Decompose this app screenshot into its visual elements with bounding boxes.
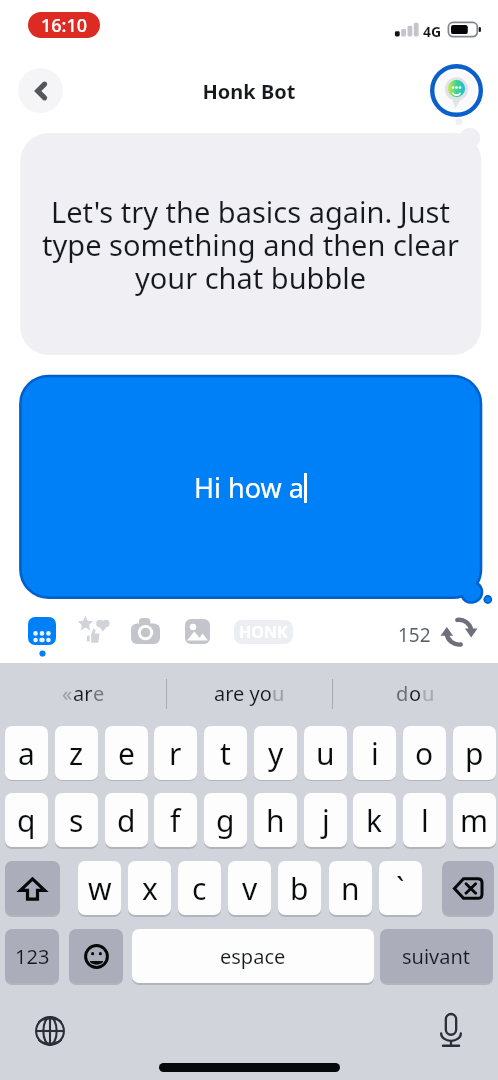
staticText: y bbox=[268, 733, 284, 774]
button[interactable]: Emoji bbox=[69, 929, 123, 983]
button[interactable]: e bbox=[105, 726, 148, 780]
staticText: 4G bbox=[423, 22, 442, 41]
staticText: f bbox=[170, 800, 181, 841]
button[interactable]: Backspace bbox=[442, 861, 494, 915]
staticText: o bbox=[409, 680, 422, 707]
staticText: ar bbox=[73, 680, 93, 707]
staticText: x bbox=[142, 868, 158, 909]
button[interactable]: l bbox=[403, 793, 446, 847]
button[interactable]: are yo bbox=[167, 662, 332, 725]
button[interactable]: c bbox=[178, 861, 221, 915]
button[interactable]: o bbox=[403, 726, 446, 780]
staticText: h bbox=[266, 800, 285, 841]
button[interactable]: w bbox=[78, 861, 121, 915]
staticText: d bbox=[396, 680, 409, 707]
staticText: b bbox=[290, 868, 309, 909]
button[interactable]: h bbox=[254, 793, 297, 847]
button[interactable]: j bbox=[304, 793, 347, 847]
staticText: « bbox=[62, 680, 73, 707]
button[interactable]: r bbox=[154, 726, 197, 780]
staticText: n bbox=[341, 868, 360, 909]
staticText: 16:10 bbox=[41, 13, 88, 38]
staticText: suivant bbox=[402, 943, 471, 970]
staticText: w bbox=[88, 868, 112, 909]
button[interactable]: k bbox=[353, 793, 396, 847]
staticText: ` bbox=[396, 868, 405, 909]
button[interactable]: i bbox=[353, 726, 396, 780]
button[interactable]: v bbox=[228, 861, 271, 915]
button[interactable]: m bbox=[453, 793, 496, 847]
staticText: espace bbox=[220, 943, 286, 970]
staticText: are yo bbox=[214, 680, 272, 707]
staticText: Honk Bot bbox=[0, 78, 498, 105]
button[interactable]: b bbox=[278, 861, 321, 915]
button[interactable]: q bbox=[5, 793, 48, 847]
staticText: s bbox=[69, 800, 84, 841]
button[interactable]: Change language bbox=[35, 1016, 65, 1046]
staticText: o bbox=[415, 733, 434, 774]
staticText: HONK bbox=[239, 621, 288, 643]
button[interactable]: espace bbox=[132, 929, 374, 983]
staticText: m bbox=[460, 800, 489, 841]
button[interactable]: Keyboard bbox=[28, 617, 56, 645]
staticText: l bbox=[421, 800, 429, 841]
button[interactable]: « bbox=[0, 662, 166, 725]
staticText: c bbox=[192, 868, 207, 909]
staticText: q bbox=[17, 800, 36, 841]
staticText: t bbox=[220, 733, 231, 774]
button[interactable]: y bbox=[254, 726, 297, 780]
staticText: r bbox=[169, 733, 182, 774]
button[interactable]: Refresh bbox=[440, 618, 478, 646]
button[interactable]: a bbox=[5, 726, 48, 780]
button[interactable]: Bot avatar bbox=[430, 64, 483, 117]
button[interactable]: Photos bbox=[185, 619, 210, 644]
staticText: i bbox=[371, 733, 379, 774]
staticText: 123 bbox=[15, 943, 50, 970]
staticText: v bbox=[242, 868, 258, 909]
staticText: u bbox=[422, 680, 435, 707]
button[interactable]: f bbox=[154, 793, 197, 847]
staticText: p bbox=[465, 733, 484, 774]
button[interactable]: d bbox=[333, 662, 498, 725]
staticText: j bbox=[322, 800, 330, 841]
button[interactable]: z bbox=[55, 726, 98, 780]
staticText: d bbox=[117, 800, 136, 841]
staticText: k bbox=[366, 800, 383, 841]
button[interactable]: t bbox=[204, 726, 247, 780]
button[interactable]: Voice input bbox=[440, 1013, 462, 1047]
button[interactable]: x bbox=[128, 861, 171, 915]
button[interactable]: Camera bbox=[131, 618, 160, 644]
button[interactable]: Shift bbox=[5, 861, 60, 915]
staticText: 152 bbox=[398, 622, 431, 648]
button[interactable]: ` bbox=[379, 861, 422, 915]
staticText: e bbox=[118, 733, 135, 774]
button[interactable]: g bbox=[204, 793, 247, 847]
button[interactable]: n bbox=[329, 861, 372, 915]
button[interactable]: d bbox=[105, 793, 148, 847]
button[interactable]: suivant bbox=[380, 929, 493, 983]
button[interactable]: Stickers bbox=[78, 617, 111, 645]
staticText: u bbox=[272, 680, 285, 707]
button[interactable]: p bbox=[453, 726, 496, 780]
staticText: a bbox=[18, 733, 35, 774]
button[interactable]: Back bbox=[18, 68, 63, 113]
staticText: u bbox=[316, 733, 335, 774]
button[interactable]: u bbox=[304, 726, 347, 780]
staticText: g bbox=[216, 800, 235, 841]
staticText: e bbox=[93, 680, 105, 707]
button[interactable]: 123 bbox=[5, 929, 59, 983]
staticText: Let's try the basics again. Just type so… bbox=[42, 192, 459, 297]
button[interactable]: HONK bbox=[234, 620, 293, 644]
staticText: Hi how a bbox=[194, 469, 304, 506]
staticText: z bbox=[69, 733, 84, 774]
button[interactable]: s bbox=[55, 793, 98, 847]
